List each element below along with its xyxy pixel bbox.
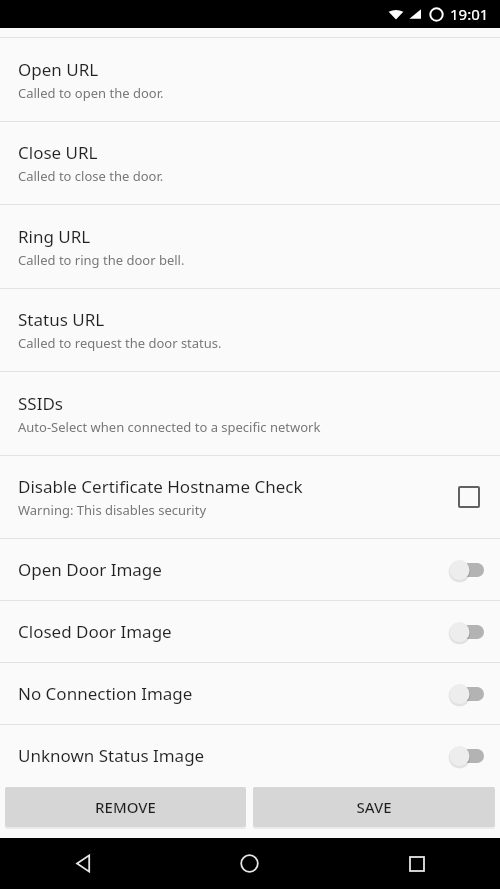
other: Toggle	[438, 555, 484, 585]
button[interactable]: REMOVE	[5, 787, 246, 827]
button[interactable]: SSIDs	[0, 372, 500, 455]
button[interactable]: Back	[0, 838, 166, 889]
staticText: Called to ring the door bell.	[18, 251, 185, 269]
button[interactable]: Closed Door Image	[0, 601, 500, 662]
staticText: Warning: This disables security	[18, 501, 207, 519]
button[interactable]: Ring URL	[0, 205, 500, 288]
staticText: No Connection Image	[18, 682, 193, 705]
staticText: Open URL	[18, 58, 99, 81]
staticText: Open Door Image	[18, 558, 162, 581]
staticText: 19:01	[450, 4, 489, 24]
staticText: Auto-Select when connected to a specific…	[18, 418, 321, 436]
staticText: Called to open the door.	[18, 84, 164, 102]
button[interactable]: Home	[166, 838, 333, 889]
button[interactable]: Unknown Status Image	[0, 725, 500, 786]
other: Disable Certificate Hostname Check	[454, 482, 484, 512]
staticText: Ring URL	[18, 225, 91, 248]
staticText: REMOVE	[95, 797, 156, 817]
staticText: SAVE	[356, 797, 392, 817]
staticText: Called to request the door status.	[18, 334, 222, 352]
other: Toggle	[438, 741, 484, 771]
staticText: Disable Certificate Hostname Check	[18, 475, 303, 498]
staticText: Unknown Status Image	[18, 744, 205, 767]
button[interactable]: Open URL	[0, 38, 500, 121]
button[interactable]: Status URL	[0, 289, 500, 371]
button[interactable]: SAVE	[253, 787, 495, 827]
staticText: Status URL	[18, 308, 105, 331]
button[interactable]: No Connection Image	[0, 663, 500, 724]
staticText: Close URL	[18, 141, 98, 164]
staticText: SSIDs	[18, 392, 63, 415]
button[interactable]: Open Door Image	[0, 539, 500, 600]
staticText: Called to close the door.	[18, 167, 164, 185]
other: Toggle	[438, 617, 484, 647]
button[interactable]: Disable Certificate Hostname Check	[0, 456, 500, 538]
other: Toggle	[438, 679, 484, 709]
staticText: Closed Door Image	[18, 620, 172, 643]
button[interactable]: Recent apps	[333, 838, 500, 889]
button[interactable]: Close URL	[0, 122, 500, 204]
